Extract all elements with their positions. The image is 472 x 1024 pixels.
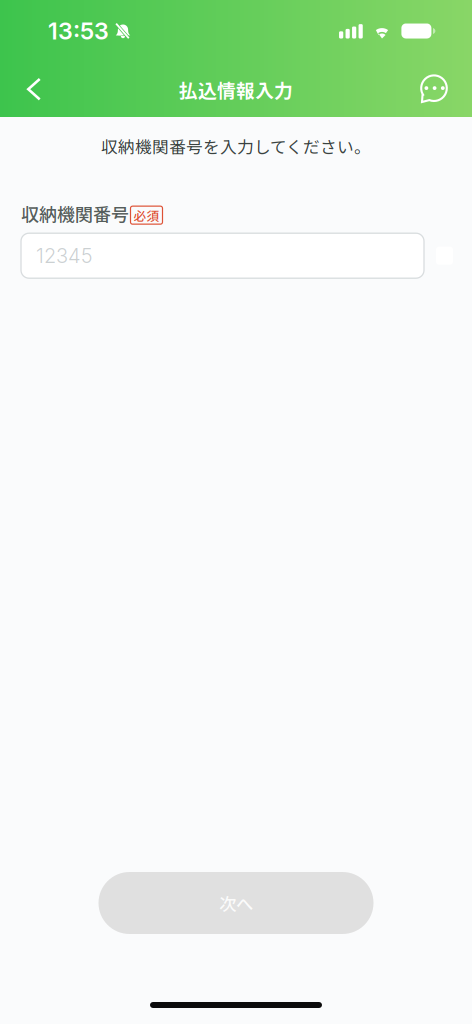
button[interactable]: 収納機関番号 (21, 233, 424, 278)
staticText: 払込情報入力 (179, 76, 293, 103)
button[interactable]: 戻る (11, 66, 57, 112)
staticText: 収納機関番号 (21, 200, 129, 226)
button[interactable]: 次へ (98, 872, 373, 934)
button[interactable]: チャットサポート (411, 66, 457, 112)
staticText: 13:53 (48, 17, 109, 45)
staticText: 収納機関番号を入力してください。 (101, 134, 371, 158)
staticText: 次へ (219, 890, 253, 916)
staticText: 12345 (36, 244, 93, 268)
staticText: 必須 (133, 206, 159, 224)
